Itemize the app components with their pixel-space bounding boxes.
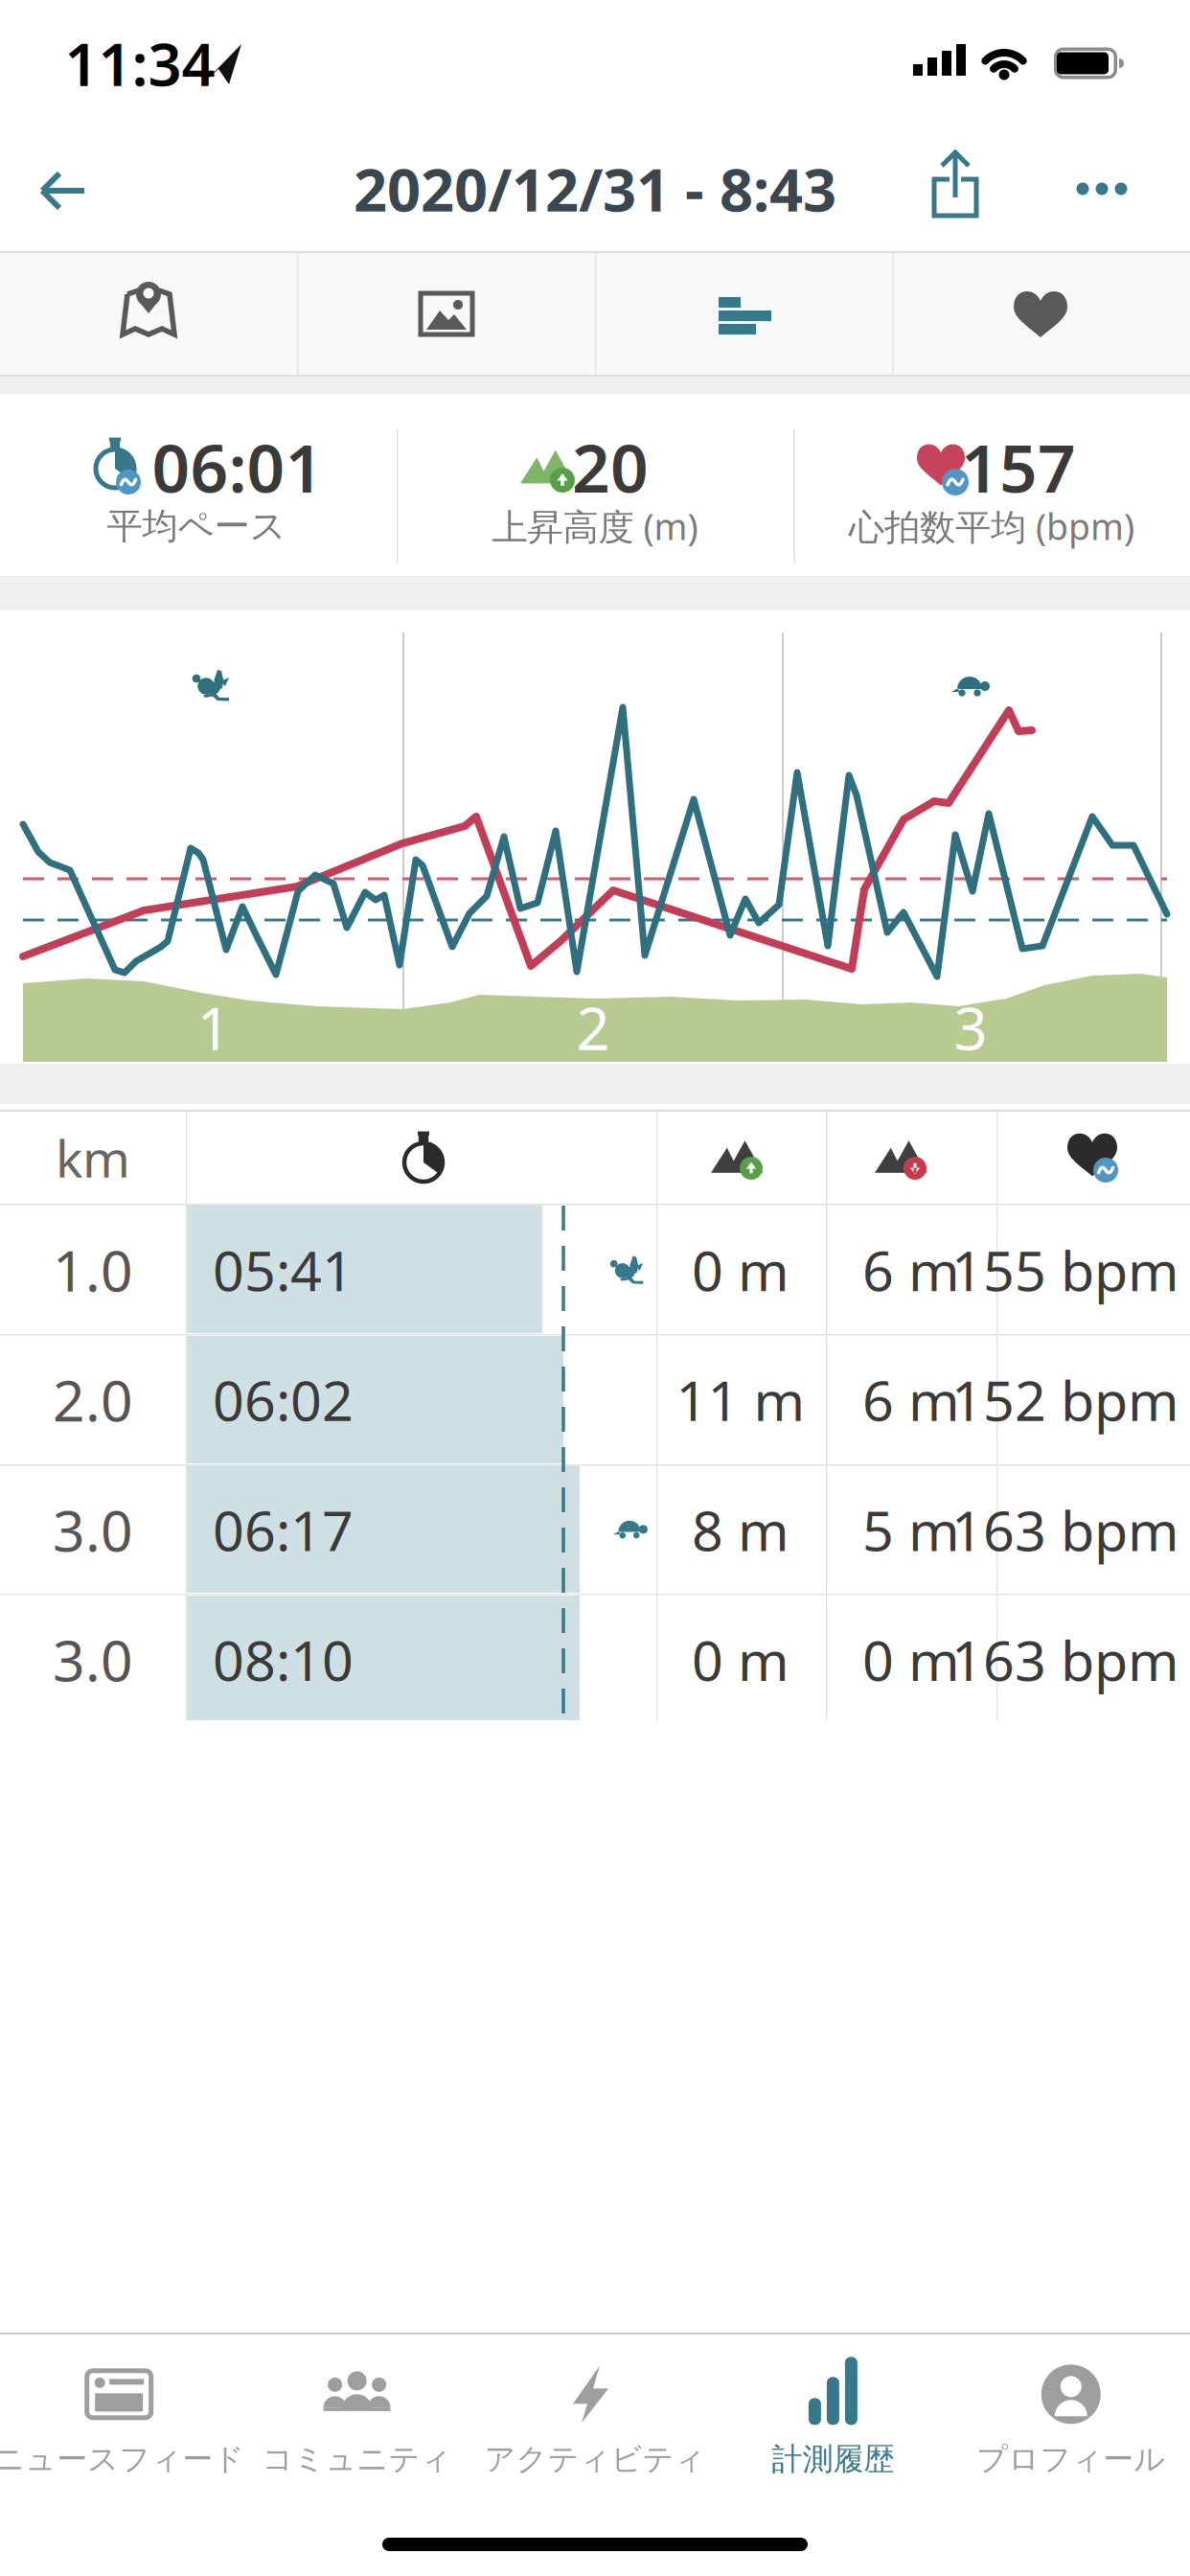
button[interactable]: Splits — [596, 253, 891, 375]
staticText: 5 m — [862, 1493, 960, 1566]
staticText: 20 — [572, 423, 649, 511]
staticText: 06:17 — [213, 1493, 354, 1566]
button[interactable]: Photos — [299, 253, 594, 375]
staticText: アクティビティ — [484, 2440, 706, 2478]
staticText: 06:01 — [152, 423, 323, 511]
staticText: 157 — [961, 423, 1076, 511]
staticText: 1 — [197, 988, 230, 1066]
button[interactable]: コミュニティ — [231, 2356, 483, 2486]
button[interactable]: プロフィール — [945, 2356, 1190, 2486]
button[interactable]: Share — [921, 149, 990, 221]
button[interactable]: 計測履歴 — [707, 2356, 959, 2486]
staticText: 3.0 — [53, 1622, 133, 1697]
staticText: 上昇高度 (m) — [492, 502, 698, 550]
staticText: 2020/12/31 - 8:43 — [354, 150, 836, 228]
staticText: 3 — [954, 988, 987, 1066]
staticText: km — [56, 1124, 130, 1192]
staticText: 163 bpm — [951, 1623, 1179, 1696]
staticText: 0 m — [692, 1623, 790, 1696]
staticText: 8 m — [692, 1493, 790, 1566]
staticText: 163 bpm — [951, 1493, 1179, 1566]
staticText: 心拍数平均 (bpm) — [849, 502, 1134, 550]
staticText: 平均ペース — [107, 504, 286, 548]
staticText: コミュニティ — [262, 2440, 452, 2478]
staticText: 155 bpm — [951, 1233, 1179, 1306]
button[interactable]: More — [1073, 179, 1131, 198]
staticText: 計測履歴 — [772, 2440, 894, 2478]
staticText: ニュースフィード — [0, 2440, 245, 2478]
button[interactable]: アクティビティ — [469, 2356, 721, 2486]
staticText: 08:10 — [213, 1623, 354, 1696]
staticText: 2 — [576, 988, 610, 1066]
button[interactable]: Heart rate — [893, 253, 1188, 375]
staticText: 11 m — [676, 1363, 805, 1436]
staticText: プロフィール — [977, 2440, 1165, 2478]
staticText: 152 bpm — [951, 1363, 1179, 1436]
button[interactable]: ニュースフィード — [0, 2356, 245, 2486]
staticText: 2.0 — [53, 1362, 133, 1437]
button[interactable]: Map — [1, 253, 296, 375]
staticText: 05:41 — [213, 1233, 354, 1306]
staticText: 3.0 — [53, 1492, 133, 1567]
staticText: 0 m — [692, 1233, 790, 1306]
staticText: 11:34 — [65, 24, 215, 102]
button[interactable]: Back — [21, 148, 105, 232]
staticText: 1.0 — [53, 1232, 133, 1307]
staticText: 06:02 — [213, 1363, 354, 1436]
staticText: 6 m — [862, 1233, 960, 1306]
staticText: 0 m — [862, 1623, 960, 1696]
staticText: 6 m — [862, 1363, 960, 1436]
